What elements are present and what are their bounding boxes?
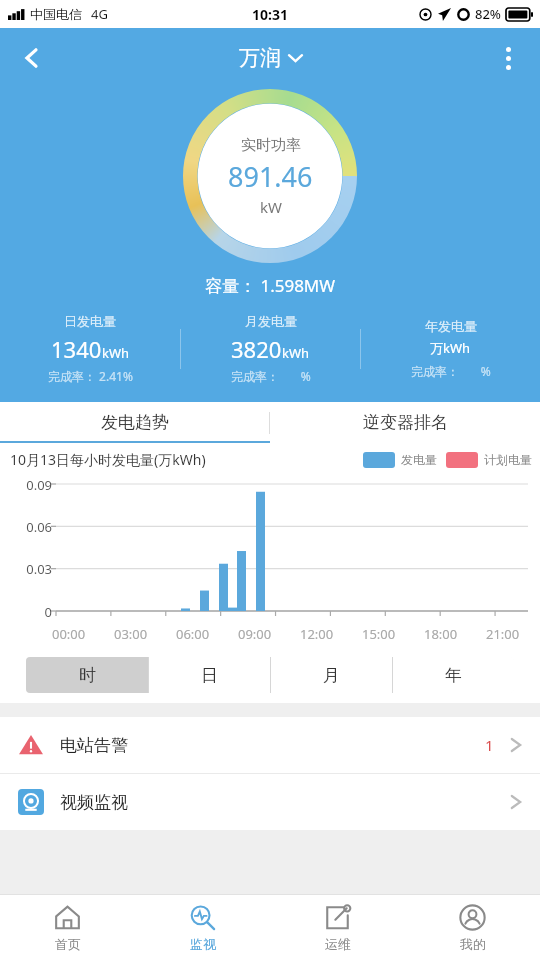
staticText: 容量： 1.598MW	[205, 274, 336, 297]
staticText: 06:00	[176, 625, 210, 643]
staticText: 万润	[239, 45, 281, 71]
staticText: 中国电信	[30, 6, 82, 22]
staticText: 万kWh	[430, 339, 471, 357]
staticText: 0.06	[8, 518, 52, 536]
staticText: 03:00	[114, 625, 148, 643]
staticText: 发电趋势	[101, 412, 169, 433]
staticText: 月	[323, 665, 340, 686]
staticText: 日发电量	[64, 313, 116, 329]
staticText: 首页	[55, 936, 81, 952]
staticText: 计划电量	[484, 452, 532, 467]
staticText: 0	[8, 603, 52, 621]
staticText: 0.03	[8, 560, 52, 578]
staticText: 完成率： %	[411, 363, 491, 379]
staticText: 10月13日每小时发电量(万kWh)	[10, 450, 206, 469]
staticText: 完成率： 2.41%	[48, 368, 133, 384]
staticText: 电站告警	[60, 735, 128, 756]
staticText: 我的	[460, 936, 486, 952]
staticText: kW	[260, 197, 282, 217]
staticText: 时	[79, 665, 96, 686]
staticText: 1340	[51, 334, 102, 364]
staticText: 实时功率	[241, 136, 301, 155]
staticText: 月发电量	[245, 313, 297, 329]
staticText: 逆变器排名	[363, 412, 448, 433]
staticText: 监视	[190, 936, 216, 952]
staticText: 00:00	[52, 625, 86, 643]
staticText: kWh	[102, 344, 130, 362]
staticText: 891.46	[228, 158, 313, 195]
button[interactable]: 我的	[405, 895, 540, 960]
staticText: 视频监视	[60, 792, 128, 813]
staticText: 82%	[475, 5, 501, 23]
staticText: 12:00	[300, 625, 334, 643]
staticText: 09:00	[238, 625, 272, 643]
staticText: 年	[445, 665, 462, 686]
staticText: 10:31	[252, 5, 288, 24]
staticText: 年发电量	[425, 318, 477, 334]
staticText: kWh	[282, 344, 310, 362]
button[interactable]: More options	[484, 34, 532, 82]
button[interactable]: 监视	[135, 895, 270, 960]
button[interactable]: 年	[393, 657, 514, 693]
button[interactable]: Back	[8, 34, 56, 82]
staticText: 1	[485, 735, 494, 755]
button[interactable]: 万润	[239, 45, 302, 71]
staticText: 18:00	[424, 625, 458, 643]
staticText: 0.09	[8, 476, 52, 494]
button[interactable]: 首页	[0, 895, 135, 960]
button[interactable]: 日	[149, 657, 270, 693]
staticText: 3820	[231, 334, 282, 364]
staticText: 发电量	[401, 452, 437, 467]
button[interactable]: 电站告警	[0, 717, 540, 773]
button[interactable]: 时	[26, 657, 148, 693]
button[interactable]: 月	[271, 657, 392, 693]
button[interactable]: 视频监视	[0, 774, 540, 830]
staticText: 15:00	[362, 625, 396, 643]
staticText: 运维	[325, 936, 351, 952]
button[interactable]: 逆变器排名	[270, 402, 540, 443]
staticText: 完成率： %	[231, 368, 311, 384]
button[interactable]: 运维	[270, 895, 405, 960]
staticText: 21:00	[486, 625, 520, 643]
staticText: 4G	[91, 5, 108, 23]
staticText: 日	[201, 665, 218, 686]
button[interactable]: 发电趋势	[0, 402, 269, 443]
